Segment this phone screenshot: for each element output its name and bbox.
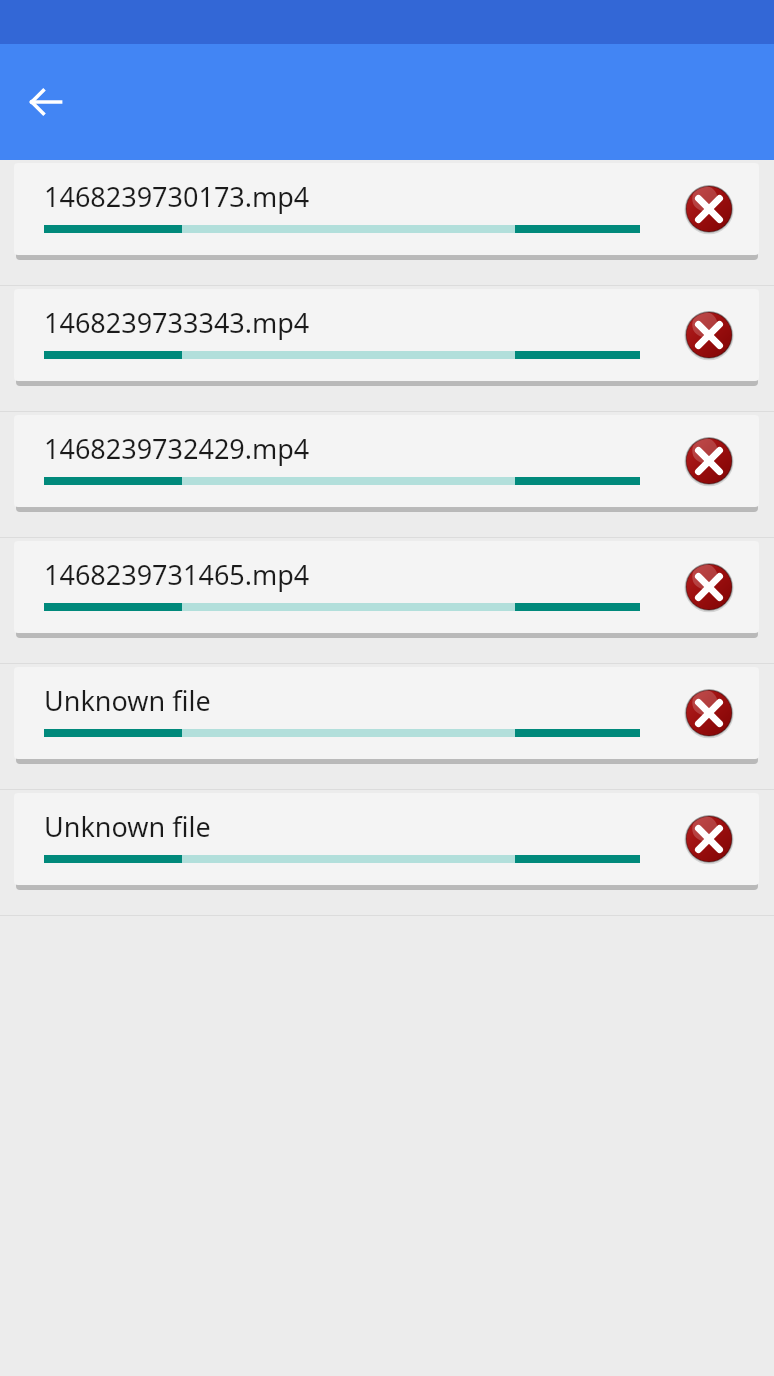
staticText: Unknown file: [44, 682, 644, 719]
staticText: 1468239730173.mp4: [44, 178, 644, 215]
staticText: 1468239732429.mp4: [44, 430, 644, 467]
button[interactable]: Delete: [677, 807, 741, 871]
button[interactable]: 1468239731465.mp4: [0, 538, 774, 664]
button[interactable]: 1468239730173.mp4: [0, 160, 774, 286]
staticText: Unknown file: [44, 808, 644, 845]
button[interactable]: Delete: [677, 429, 741, 493]
button[interactable]: Delete: [677, 303, 741, 367]
button[interactable]: Unknown file: [0, 664, 774, 790]
button[interactable]: Delete: [677, 555, 741, 619]
button[interactable]: Unknown file: [0, 790, 774, 916]
button[interactable]: Delete: [677, 681, 741, 745]
staticText: 1468239733343.mp4: [44, 304, 644, 341]
button[interactable]: Delete: [677, 177, 741, 241]
staticText: 1468239731465.mp4: [44, 556, 644, 593]
button[interactable]: Back: [14, 70, 78, 134]
button[interactable]: 1468239733343.mp4: [0, 286, 774, 412]
button[interactable]: 1468239732429.mp4: [0, 412, 774, 538]
